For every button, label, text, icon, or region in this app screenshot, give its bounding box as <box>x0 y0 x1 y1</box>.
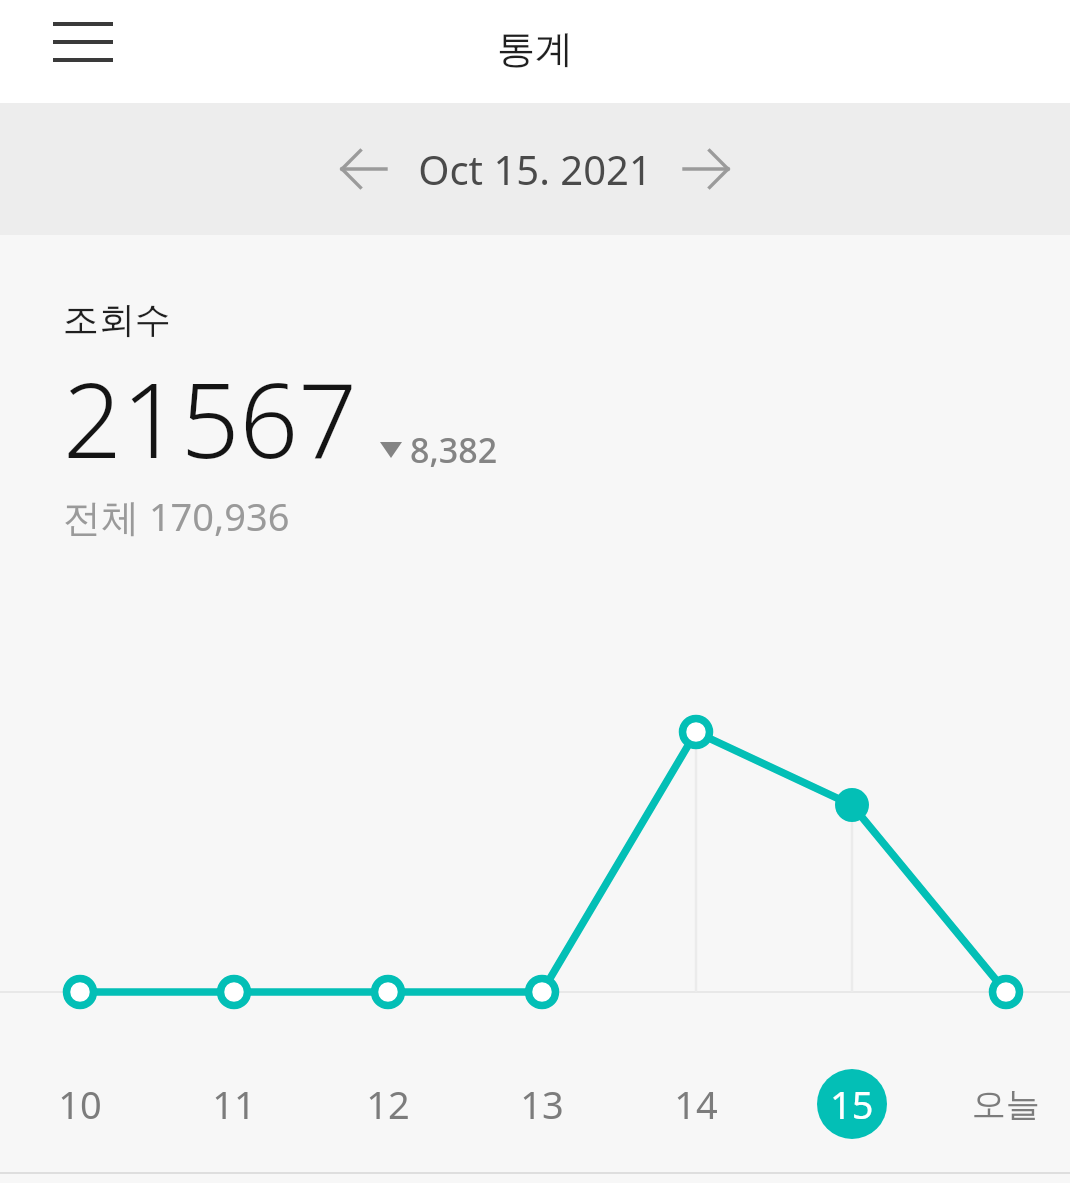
staticText: 14 <box>674 1078 718 1130</box>
button[interactable]: 11 <box>186 1056 282 1152</box>
button[interactable]: 오늘 <box>958 1056 1054 1152</box>
staticText: 15 <box>830 1078 874 1130</box>
button[interactable]: Previous day <box>325 130 403 208</box>
button[interactable]: 12 <box>340 1056 436 1152</box>
staticText: 13 <box>520 1078 564 1130</box>
staticText: 전체 170,936 <box>63 490 290 542</box>
staticText: 8,382 <box>410 427 498 473</box>
staticText: 통계 <box>497 25 573 73</box>
button[interactable]: Next day <box>667 130 745 208</box>
button[interactable]: Oct 15. 2021 <box>403 142 667 196</box>
staticText: 12 <box>366 1078 410 1130</box>
staticText: 21567 <box>63 348 358 488</box>
button[interactable]: 15 <box>804 1056 900 1152</box>
staticText: 오늘 <box>972 1083 1040 1126</box>
button[interactable]: 13 <box>494 1056 590 1152</box>
staticText: 10 <box>58 1078 102 1130</box>
staticText: Oct 15. 2021 <box>418 142 652 196</box>
staticText: 조회수 <box>63 297 171 342</box>
button[interactable]: Menu <box>33 2 133 78</box>
staticText: 11 <box>212 1078 256 1130</box>
button[interactable]: 14 <box>648 1056 744 1152</box>
button[interactable]: 10 <box>32 1056 128 1152</box>
